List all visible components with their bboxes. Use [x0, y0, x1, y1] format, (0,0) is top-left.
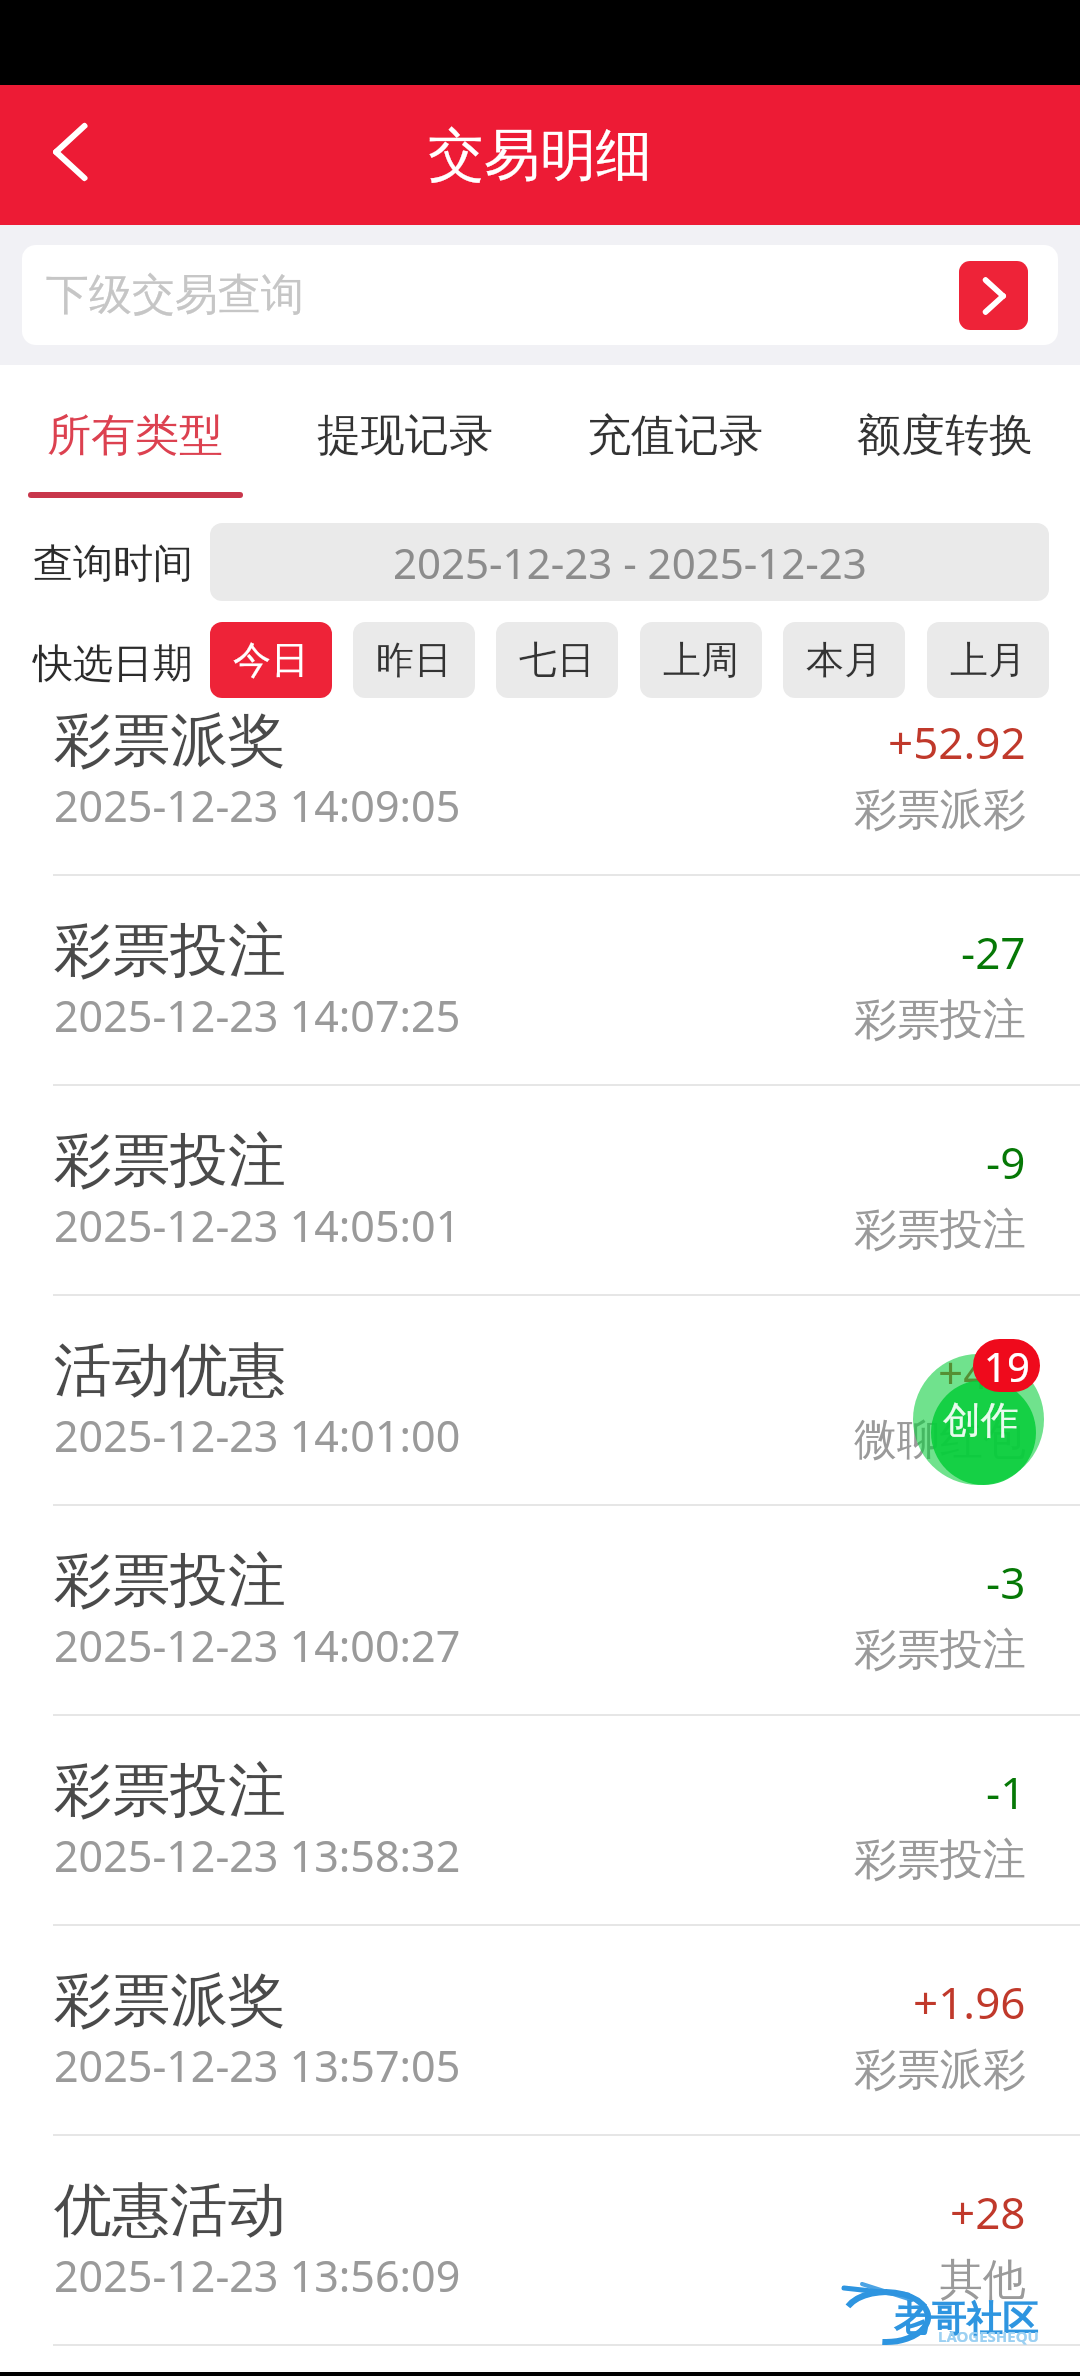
- button[interactable]: 本月: [783, 622, 905, 698]
- button[interactable]: Search: [959, 261, 1028, 330]
- staticText: 充值记录: [587, 408, 763, 463]
- button[interactable]: 上周: [640, 622, 762, 698]
- button[interactable]: 彩票投注: [0, 1504, 1080, 1714]
- staticText: 上周: [663, 636, 739, 684]
- staticText: 2025-12-23 14:00:27: [54, 1616, 461, 1675]
- staticText: 2025-12-23 13:56:09: [54, 2246, 461, 2305]
- staticText: 本月: [806, 636, 882, 684]
- staticText: 所有类型: [47, 408, 223, 463]
- staticText: 彩票投注: [54, 914, 286, 987]
- button[interactable]: 彩票投注: [0, 2344, 1080, 2376]
- button[interactable]: 彩票派奖: [0, 664, 1080, 874]
- staticText: 2025-12-23 14:09:05: [54, 776, 461, 835]
- button[interactable]: 活动优惠: [0, 1294, 1080, 1504]
- staticText: 2025-12-23 - 2025-12-23: [393, 534, 867, 591]
- button[interactable]: 彩票投注: [0, 1084, 1080, 1294]
- button[interactable]: 今日: [210, 622, 332, 698]
- staticText: 2025-12-23 13:57:05: [54, 2036, 461, 2095]
- staticText: +1.96: [913, 1972, 1026, 2032]
- staticText: 19: [984, 1339, 1030, 1392]
- staticText: LAOGESHEQU: [938, 2326, 1039, 2346]
- staticText: 彩票投注: [54, 1124, 286, 1197]
- button[interactable]: 所有类型: [0, 365, 270, 505]
- button[interactable]: 提现记录: [270, 365, 540, 505]
- staticText: 2025-12-23 13:58:32: [54, 1826, 461, 1885]
- staticText: 下级交易查询: [46, 268, 959, 322]
- staticText: 微聊红包: [854, 1413, 1026, 1467]
- staticText: 彩票投注: [854, 993, 1026, 1047]
- button[interactable]: 彩票投注: [0, 1714, 1080, 1924]
- staticText: 优惠活动: [54, 2174, 286, 2247]
- button[interactable]: 额度转换: [810, 365, 1080, 505]
- staticText: 快选日期: [33, 638, 193, 688]
- staticText: 彩票投注: [54, 1544, 286, 1617]
- staticText: -3: [986, 1552, 1026, 1612]
- staticText: 彩票派奖: [54, 704, 286, 777]
- staticText: 昨日: [376, 636, 452, 684]
- button[interactable]: 七日: [496, 622, 618, 698]
- button[interactable]: 下级交易查询: [22, 245, 1058, 345]
- staticText: 彩票投注: [854, 1833, 1026, 1887]
- button[interactable]: 彩票投注: [0, 874, 1080, 1084]
- button[interactable]: 充值记录: [540, 365, 810, 505]
- staticText: 2025-12-23 14:01:00: [54, 1406, 461, 1465]
- staticText: 七日: [519, 636, 595, 684]
- staticText: 额度转换: [857, 408, 1033, 463]
- staticText: 上月: [950, 636, 1026, 684]
- button[interactable]: 昨日: [353, 622, 475, 698]
- staticText: -1: [986, 1762, 1026, 1822]
- staticText: 彩票投注: [54, 1754, 286, 1827]
- staticText: 创作: [943, 1396, 1019, 1444]
- staticText: 今日: [233, 636, 309, 684]
- staticText: +52.92: [888, 712, 1026, 772]
- button[interactable]: 优惠活动: [0, 2134, 1080, 2344]
- staticText: -9: [986, 1132, 1026, 1192]
- button[interactable]: 2025-12-23 - 2025-12-23: [210, 523, 1049, 601]
- staticText: 彩票投注: [854, 1203, 1026, 1257]
- staticText: 其他: [940, 2253, 1026, 2307]
- staticText: 彩票派彩: [854, 2043, 1026, 2097]
- staticText: 彩票派彩: [854, 783, 1026, 837]
- staticText: 2025-12-23 14:05:01: [54, 1196, 461, 1255]
- staticText: 活动优惠: [54, 1334, 286, 1407]
- button[interactable]: 彩票派奖: [0, 1924, 1080, 2134]
- staticText: +4.5: [938, 1342, 1026, 1402]
- staticText: 交易明细: [428, 120, 652, 191]
- button[interactable]: 创作: [913, 1354, 1044, 1485]
- button[interactable]: 上月: [927, 622, 1049, 698]
- staticText: 彩票派奖: [54, 1964, 286, 2037]
- staticText: 查询时间: [33, 538, 193, 588]
- staticText: -27: [961, 922, 1026, 982]
- button[interactable]: Back: [0, 85, 140, 225]
- staticText: 2025-12-23 14:07:25: [54, 986, 461, 1045]
- staticText: 彩票投注: [854, 1623, 1026, 1677]
- staticText: +28: [950, 2182, 1026, 2242]
- staticText: 老哥社区: [894, 2296, 1038, 2341]
- staticText: 提现记录: [317, 408, 493, 463]
